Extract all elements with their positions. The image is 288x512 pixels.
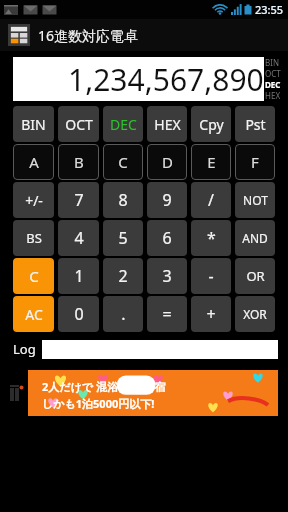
staticText: 2	[118, 265, 128, 287]
staticText: D	[162, 152, 173, 172]
staticText: NOT	[243, 192, 268, 208]
button[interactable]: HEX	[147, 106, 187, 142]
button[interactable]: 3	[147, 258, 187, 294]
staticText: E	[207, 152, 216, 172]
staticText: BS	[26, 229, 42, 247]
button[interactable]: OR	[235, 258, 275, 294]
button[interactable]: BIN	[13, 106, 54, 142]
button[interactable]: Pst	[235, 106, 275, 142]
button[interactable]: +/-	[13, 182, 54, 218]
staticText: HEX	[154, 115, 181, 134]
staticText: C	[29, 266, 39, 286]
button[interactable]: 2	[103, 258, 143, 294]
staticText: AC	[25, 305, 43, 324]
staticText: AND	[242, 230, 268, 246]
staticText: 3	[162, 265, 172, 287]
button[interactable]: 7	[58, 182, 99, 218]
staticText: C	[118, 152, 128, 172]
button[interactable]: D	[147, 144, 187, 180]
button[interactable]: Advertisement	[28, 370, 278, 416]
staticText: =	[162, 303, 172, 325]
button[interactable]: 4	[58, 220, 99, 256]
staticText: Cpy	[199, 115, 224, 134]
staticText: 16進数対応電卓	[38, 26, 139, 45]
button[interactable]: DEC	[103, 106, 143, 142]
staticText: HEX	[265, 90, 281, 101]
staticText: +	[206, 303, 216, 325]
button[interactable]: 8	[103, 182, 143, 218]
button[interactable]: -	[191, 258, 231, 294]
staticText: BIN	[21, 115, 46, 134]
staticText: DEC	[110, 115, 137, 134]
button[interactable]: XOR	[235, 296, 275, 332]
staticText: 8	[118, 189, 128, 211]
staticText: 7	[74, 189, 84, 211]
staticText: A	[29, 152, 39, 172]
button[interactable]: .	[103, 296, 143, 332]
staticText: OCT	[65, 115, 93, 134]
button[interactable]: OCT	[58, 106, 99, 142]
button[interactable]: F	[235, 144, 275, 180]
staticText: F	[251, 152, 259, 172]
staticText: XOR	[243, 306, 267, 322]
staticText: OR	[246, 267, 265, 285]
staticText: *	[207, 227, 216, 249]
staticText: 1	[74, 265, 84, 287]
staticText: 2人だけで 混浴 できる宿	[42, 379, 166, 394]
button[interactable]: +	[191, 296, 231, 332]
staticText: OCT	[265, 68, 281, 79]
button[interactable]: *	[191, 220, 231, 256]
staticText: 0	[74, 303, 84, 325]
button[interactable]: NOT	[235, 182, 275, 218]
staticText: +/-	[25, 191, 43, 210]
button[interactable]: 6	[147, 220, 187, 256]
button[interactable]: 9	[147, 182, 187, 218]
button[interactable]: C	[13, 258, 54, 294]
staticText: 4	[74, 227, 84, 249]
button[interactable]: 1	[58, 258, 99, 294]
button[interactable]: A	[13, 144, 54, 180]
staticText: B	[74, 152, 84, 172]
button[interactable]: AC	[13, 296, 54, 332]
staticText: 5	[118, 227, 128, 249]
staticText: 1,234,567,890	[68, 59, 264, 100]
button[interactable]: =	[147, 296, 187, 332]
staticText: /	[208, 189, 214, 211]
staticText: BIN	[265, 57, 279, 68]
button[interactable]: 0	[58, 296, 99, 332]
button[interactable]: /	[191, 182, 231, 218]
staticText: しかも1泊5000円以下!	[42, 396, 155, 411]
staticText: 9	[162, 189, 172, 211]
button[interactable]: 5	[103, 220, 143, 256]
staticText: 23:55	[255, 2, 284, 17]
button[interactable]: B	[58, 144, 99, 180]
staticText: 6	[162, 227, 172, 249]
staticText: Pst	[245, 115, 266, 134]
button[interactable]: E	[191, 144, 231, 180]
button[interactable]: BS	[13, 220, 54, 256]
staticText: DEC	[265, 79, 281, 90]
button[interactable]: AND	[235, 220, 275, 256]
button[interactable]: C	[103, 144, 143, 180]
staticText: -	[208, 265, 214, 287]
button[interactable]: Cpy	[191, 106, 231, 142]
staticText: .	[121, 303, 126, 325]
staticText: Log	[13, 340, 36, 358]
